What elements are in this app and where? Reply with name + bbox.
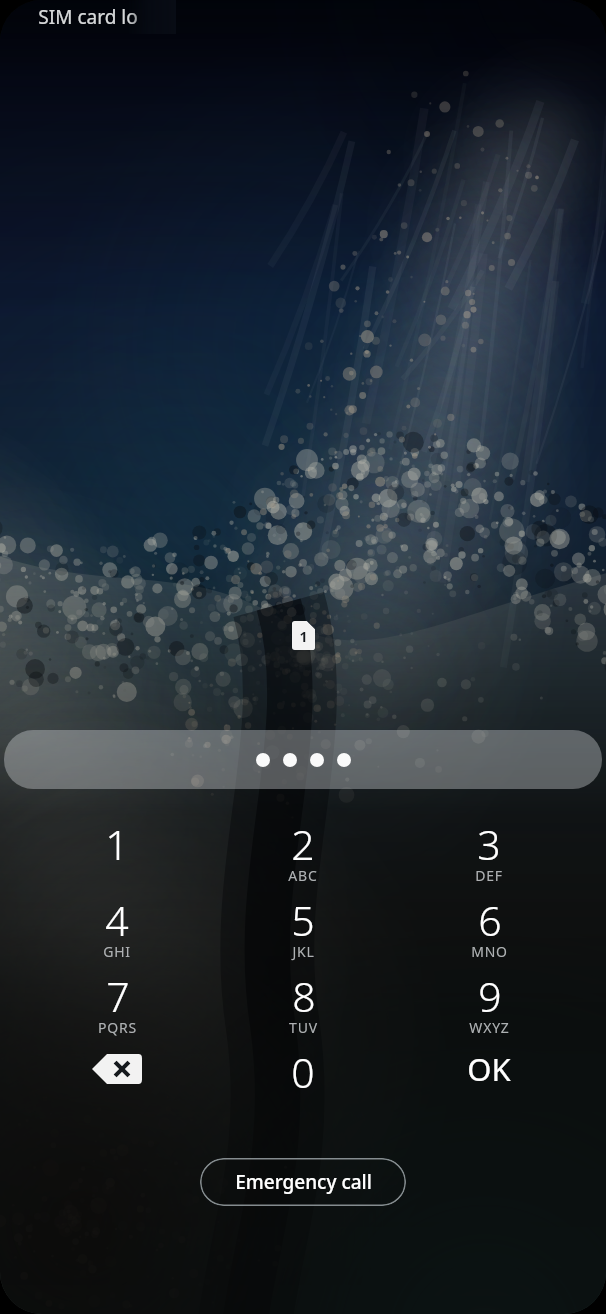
staticText: 4: [105, 892, 129, 948]
staticText: JKL: [292, 942, 315, 961]
button[interactable]: 1: [24, 818, 210, 894]
staticText: WXYZ: [469, 1018, 510, 1037]
staticText: 1: [299, 627, 308, 646]
button[interactable]: 6: [396, 894, 582, 970]
staticText: PQRS: [98, 1018, 137, 1037]
staticText: 5: [291, 892, 315, 948]
button[interactable]: 7: [24, 970, 210, 1046]
staticText: 3: [477, 816, 501, 872]
staticText: ABC: [288, 866, 318, 885]
staticText: 6: [478, 892, 502, 948]
staticText: 7: [106, 968, 130, 1024]
staticText: 2: [291, 816, 315, 872]
button[interactable]: 2: [210, 818, 396, 894]
button[interactable]: OK: [396, 1046, 582, 1122]
button[interactable]: Emergency call: [200, 1158, 406, 1206]
staticText: 0: [291, 1044, 315, 1100]
staticText: OK: [467, 1048, 511, 1090]
button[interactable]: PIN entry field: [4, 730, 602, 789]
staticText: 9: [478, 968, 502, 1024]
staticText: TUV: [289, 1018, 318, 1037]
button[interactable]: Backspace: [24, 1046, 210, 1122]
button[interactable]: 4: [24, 894, 210, 970]
button[interactable]: 3: [396, 818, 582, 894]
button[interactable]: 8: [210, 970, 396, 1046]
staticText: DEF: [475, 866, 503, 885]
staticText: MNO: [471, 942, 508, 961]
button[interactable]: 9: [396, 970, 582, 1046]
staticText: 1: [105, 816, 129, 872]
other: SIM card 1: [292, 621, 315, 650]
staticText: 8: [292, 968, 316, 1024]
staticText: Emergency call: [235, 1169, 372, 1195]
button[interactable]: 0: [210, 1046, 396, 1122]
staticText: SIM card lo: [38, 4, 138, 30]
button[interactable]: 5: [210, 894, 396, 970]
staticText: GHI: [103, 942, 131, 961]
